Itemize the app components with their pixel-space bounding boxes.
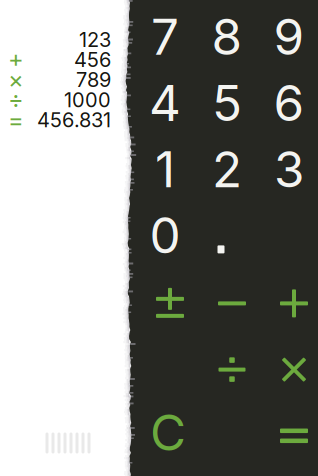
staticText: 3 [274, 139, 304, 199]
button[interactable]: Plus minus [139, 270, 201, 336]
staticText: 1 [155, 139, 175, 199]
staticText: 2 [212, 139, 242, 199]
button[interactable]: Decimal point [196, 202, 258, 268]
button[interactable]: Multiply [263, 336, 318, 403]
button[interactable]: 0 [134, 202, 196, 268]
button[interactable]: 2 [196, 136, 258, 202]
staticText: 7 [151, 7, 179, 67]
button[interactable]: 7 [134, 4, 196, 70]
staticText: 4 [149, 73, 181, 133]
button[interactable]: Equals [263, 403, 318, 469]
button[interactable]: 4 [134, 70, 196, 136]
staticText: ÷ [8, 85, 24, 114]
button[interactable]: 6 [258, 70, 318, 136]
staticText: 8 [211, 7, 242, 67]
staticText: 0 [149, 206, 180, 265]
staticText: × [8, 65, 24, 94]
staticText: 1000 [64, 88, 111, 112]
staticText: 9 [273, 7, 304, 67]
staticText: 456.831 [37, 108, 111, 132]
button[interactable]: 9 [258, 4, 318, 70]
button[interactable]: 3 [258, 136, 318, 202]
button[interactable]: Plus [263, 270, 318, 336]
button[interactable]: C [137, 399, 199, 466]
staticText: + [8, 45, 24, 74]
staticText: = [8, 105, 24, 134]
staticText: C [150, 403, 186, 462]
staticText: 6 [273, 73, 304, 133]
staticText: 456 [74, 48, 111, 72]
staticText: 123 [79, 27, 111, 52]
button[interactable]: 1 [134, 136, 196, 202]
button[interactable]: Divide [201, 336, 263, 403]
button[interactable]: Tear off tape [36, 426, 100, 460]
button[interactable]: 8 [196, 4, 258, 70]
staticText: 789 [76, 68, 111, 92]
staticText: 5 [212, 73, 242, 133]
button[interactable]: Minus [201, 270, 263, 336]
button[interactable]: 5 [196, 70, 258, 136]
